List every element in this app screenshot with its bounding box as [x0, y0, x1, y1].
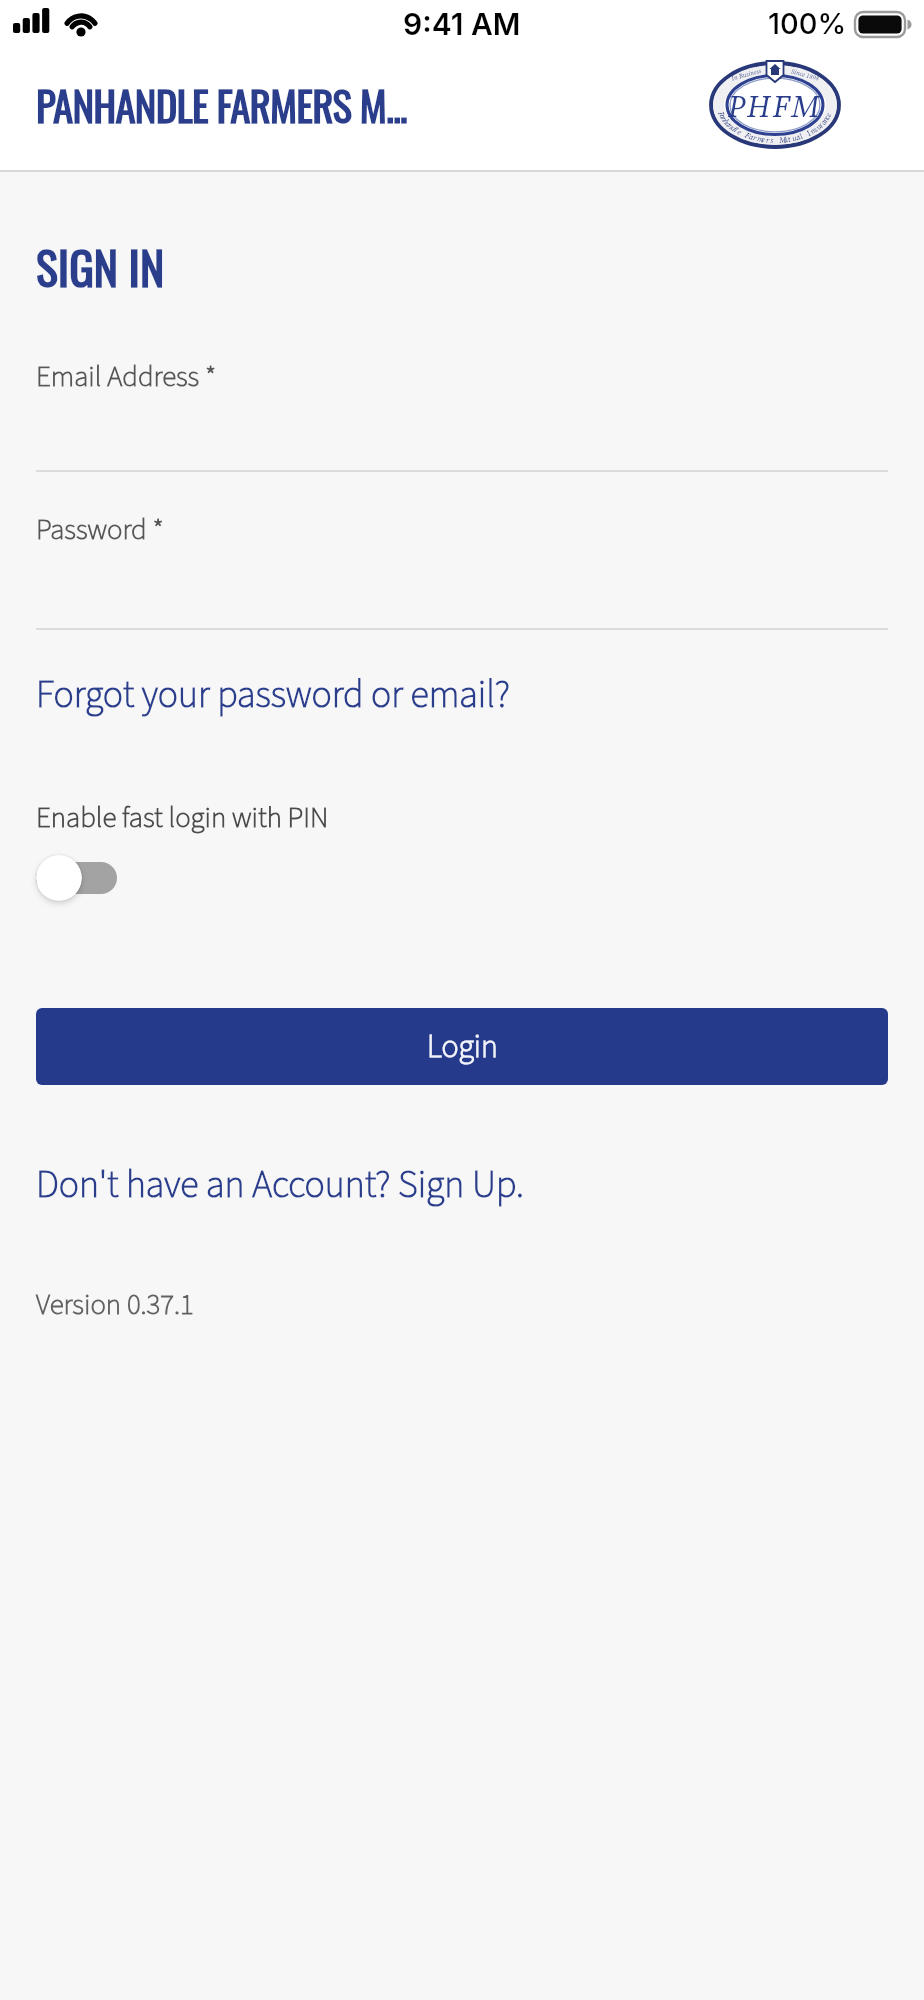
staticText: Login	[427, 1024, 498, 1070]
button[interactable]: Forgot your password or email?	[36, 668, 510, 722]
button[interactable]: Password *	[36, 503, 888, 630]
staticText: Don't have an Account? Sign Up.	[36, 1158, 524, 1212]
staticText: Password *	[36, 509, 164, 550]
staticText: 100%	[768, 6, 847, 41]
button[interactable]: Email Address *	[36, 350, 888, 472]
button[interactable]	[34, 849, 122, 905]
staticText: Version 0.37.1	[36, 1284, 194, 1325]
button[interactable]: Don't have an Account? Sign Up.	[36, 1158, 524, 1212]
staticText: Email Address *	[36, 356, 217, 397]
staticText: SIGN IN	[36, 232, 165, 300]
button[interactable]: Login	[36, 1008, 888, 1085]
staticText: 9:41 AM	[403, 6, 521, 42]
staticText: PANHANDLE FARMERS M...	[36, 74, 407, 135]
staticText: Enable fast login with PIN	[36, 797, 329, 838]
staticText: Forgot your password or email?	[36, 668, 510, 722]
staticText: PHFM	[728, 85, 823, 128]
